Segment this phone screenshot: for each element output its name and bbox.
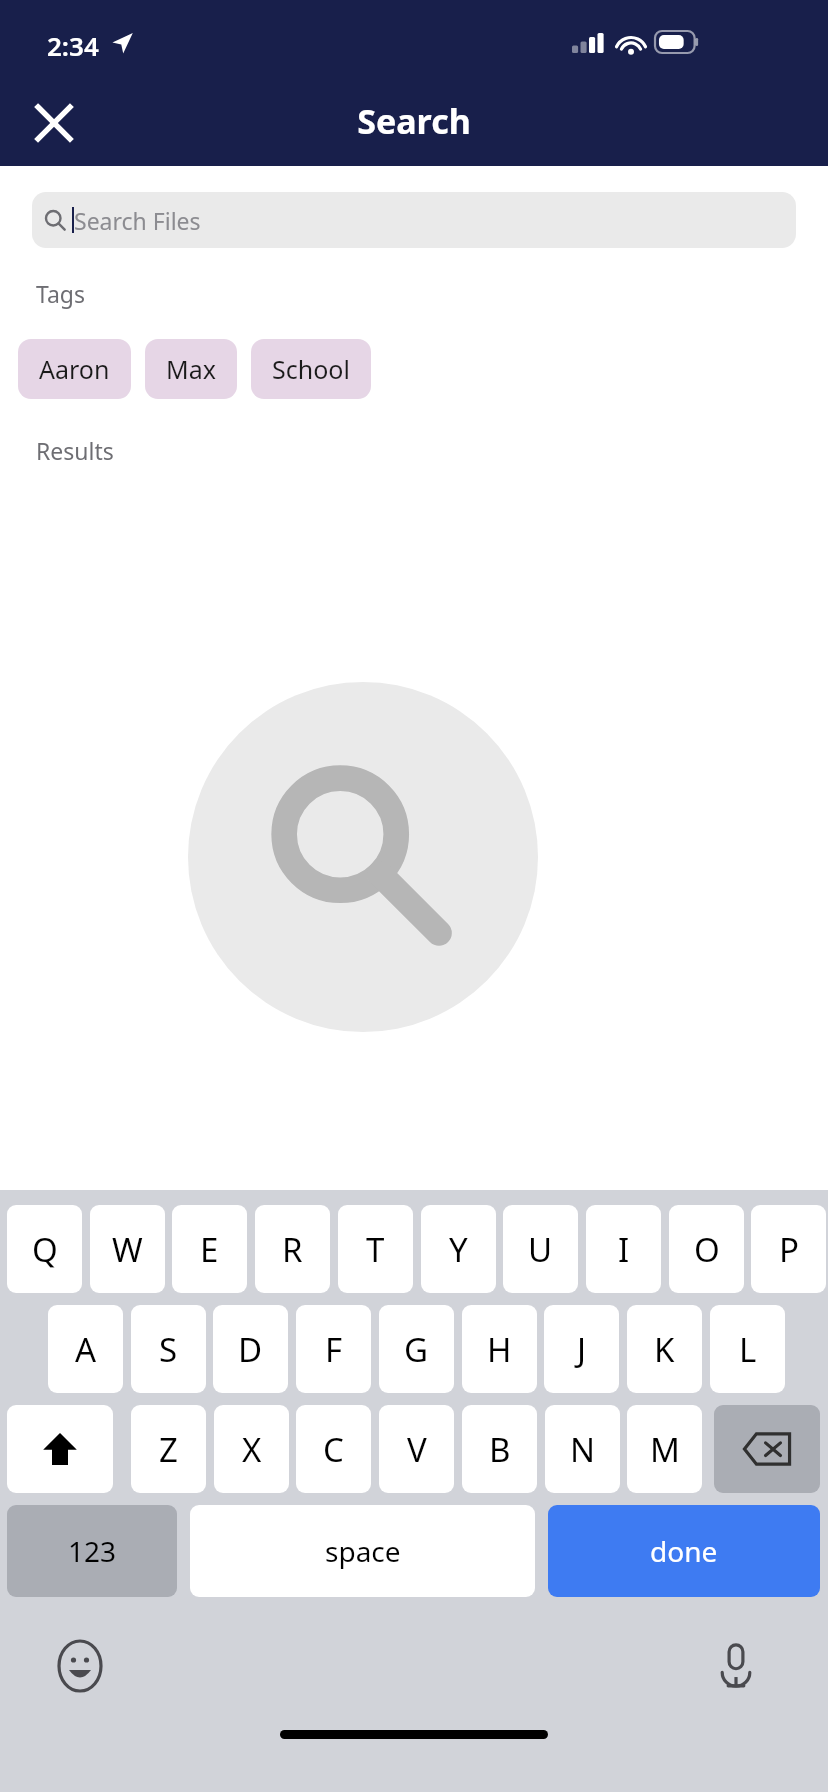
button[interactable]: C — [296, 1405, 371, 1493]
staticText: Results — [36, 435, 114, 466]
button[interactable]: Aaron — [18, 339, 131, 399]
button[interactable]: B — [462, 1405, 537, 1493]
staticText: R — [282, 1227, 303, 1272]
staticText: H — [487, 1327, 512, 1372]
button[interactable]: Backspace — [714, 1405, 820, 1493]
button[interactable]: Y — [421, 1205, 496, 1293]
button[interactable]: L — [710, 1305, 785, 1393]
button[interactable]: R — [255, 1205, 330, 1293]
staticText: Q — [32, 1227, 58, 1272]
staticText: Search — [0, 98, 828, 144]
button[interactable]: I — [586, 1205, 661, 1293]
button[interactable]: Q — [7, 1205, 82, 1293]
staticText: O — [694, 1227, 720, 1272]
staticText: A — [75, 1327, 97, 1372]
button[interactable]: School — [251, 339, 371, 399]
staticText: F — [325, 1327, 343, 1372]
staticText: 123 — [68, 1532, 117, 1570]
button[interactable]: X — [214, 1405, 289, 1493]
staticText: Y — [449, 1227, 468, 1272]
staticText: X — [242, 1427, 262, 1472]
button[interactable]: N — [545, 1405, 620, 1493]
button[interactable]: H — [462, 1305, 537, 1393]
button[interactable]: A — [48, 1305, 123, 1393]
staticText: P — [779, 1227, 799, 1272]
button[interactable]: F — [296, 1305, 371, 1393]
staticText: Z — [159, 1427, 178, 1472]
button[interactable]: E — [172, 1205, 247, 1293]
button[interactable]: T — [338, 1205, 413, 1293]
staticText: Tags — [36, 278, 86, 309]
staticText: Aaron — [39, 352, 110, 386]
staticText: N — [570, 1427, 596, 1472]
staticText: G — [404, 1327, 429, 1372]
button[interactable]: G — [379, 1305, 454, 1393]
staticText: School — [272, 352, 350, 386]
button[interactable]: J — [544, 1305, 619, 1393]
button[interactable]: S — [131, 1305, 206, 1393]
button[interactable]: Search Files — [32, 192, 796, 248]
staticText: T — [366, 1227, 385, 1272]
button[interactable]: done — [548, 1505, 820, 1597]
button[interactable]: U — [503, 1205, 578, 1293]
staticText: J — [577, 1327, 587, 1372]
staticText: K — [654, 1327, 675, 1372]
button[interactable]: Shift — [7, 1405, 113, 1493]
button[interactable]: Close — [20, 89, 88, 157]
button[interactable]: Dictate — [700, 1630, 772, 1702]
staticText: D — [238, 1327, 263, 1372]
staticText: I — [618, 1227, 630, 1272]
staticText: E — [200, 1227, 219, 1272]
staticText: W — [112, 1227, 143, 1272]
staticText: space — [325, 1532, 401, 1570]
button[interactable]: space — [190, 1505, 535, 1597]
button[interactable]: Max — [145, 339, 237, 399]
staticText: B — [489, 1427, 511, 1472]
button[interactable]: W — [90, 1205, 165, 1293]
button[interactable]: V — [379, 1405, 454, 1493]
staticText: U — [528, 1227, 553, 1272]
staticText: L — [739, 1327, 757, 1372]
staticText: 2:34 — [47, 28, 99, 63]
button[interactable]: O — [669, 1205, 744, 1293]
staticText: C — [323, 1427, 344, 1472]
button[interactable]: D — [213, 1305, 288, 1393]
button[interactable]: K — [627, 1305, 702, 1393]
staticText: done — [650, 1532, 718, 1570]
staticText: S — [159, 1327, 178, 1372]
staticText: M — [650, 1427, 680, 1472]
button[interactable]: 123 — [7, 1505, 177, 1597]
button[interactable]: M — [627, 1405, 702, 1493]
staticText: V — [407, 1427, 427, 1472]
staticText: Max — [166, 352, 216, 386]
button[interactable]: Z — [131, 1405, 206, 1493]
button[interactable]: P — [751, 1205, 826, 1293]
button[interactable]: Emoji keyboard — [44, 1630, 116, 1702]
staticText: Search Files — [74, 205, 201, 236]
